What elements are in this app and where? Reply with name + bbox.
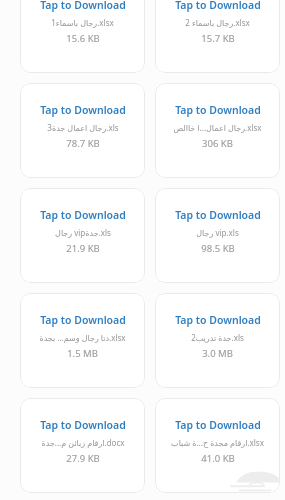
staticText: 41.0 KB [201, 452, 235, 465]
staticText: رجال اعمال جدة3.xls [47, 122, 119, 133]
button[interactable]: Tap to Download [20, 83, 145, 178]
staticText: 21.9 KB [66, 242, 100, 255]
staticText: ارقام زبائن م...جدة.docx [41, 437, 125, 448]
button[interactable]: Tap to Download [155, 293, 280, 388]
staticText: رجال اعمال...ا خاالص.xlsx [173, 122, 262, 133]
staticText: دتا رجال وسم... بجدة.xlsx [39, 332, 126, 343]
button[interactable]: Tap to Download [20, 0, 145, 73]
button[interactable]: Tap to Download [155, 83, 280, 178]
staticText: 15.6 KB [66, 32, 100, 45]
staticText: Tap to Download [40, 0, 126, 12]
staticText: 15.7 KB [201, 32, 235, 45]
button[interactable]: Tap to Download [155, 188, 280, 283]
staticText: Tap to Download [175, 103, 261, 117]
staticText: رجال باسماء1.xlsx [51, 17, 114, 28]
staticText: رجال vipجدة.xls [55, 227, 111, 238]
staticText: جدة تدريب2.xls [191, 332, 244, 343]
button[interactable]: Tap to Download [20, 188, 145, 283]
button[interactable]: Tap to Download [155, 0, 280, 73]
staticText: 27.9 KB [66, 452, 100, 465]
staticText: 3.0 MB [202, 347, 233, 360]
staticText: Tap to Download [40, 208, 126, 222]
staticText: رجال باسماء 2.xlsx [185, 17, 250, 28]
staticText: رجال vip.xls [196, 227, 239, 238]
staticText: 78.7 KB [66, 137, 100, 150]
staticText: 1.5 MB [67, 347, 98, 360]
staticText: 98.5 KB [201, 242, 235, 255]
staticText: Tap to Download [175, 313, 261, 327]
staticText: Tap to Download [175, 418, 261, 432]
other: Watermark [227, 464, 281, 494]
staticText: Tap to Download [40, 418, 126, 432]
staticText: Tap to Download [175, 208, 261, 222]
staticText: Tap to Download [40, 313, 126, 327]
button[interactable]: Tap to Download [20, 293, 145, 388]
staticText: ارقام مجدة ح...ة شباب.xlsx [171, 437, 264, 448]
button[interactable]: Tap to Download [20, 398, 145, 493]
staticText: 306 KB [202, 137, 233, 150]
staticText: Tap to Download [40, 103, 126, 117]
button[interactable]: Tap to Download [155, 398, 280, 493]
staticText: Tap to Download [175, 0, 261, 12]
